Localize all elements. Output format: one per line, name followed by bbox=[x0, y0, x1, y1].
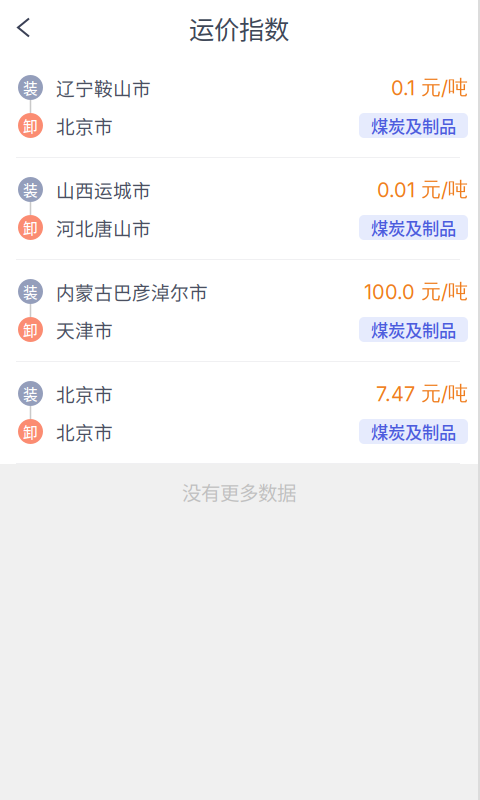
staticText: 装 bbox=[23, 383, 38, 404]
button[interactable]: 装 bbox=[0, 56, 478, 158]
staticText: 卸 bbox=[23, 319, 38, 340]
button[interactable]: Back bbox=[0, 0, 56, 56]
staticText: 天津市 bbox=[56, 316, 113, 343]
staticText: 河北唐山市 bbox=[56, 214, 151, 241]
staticText: 北京市 bbox=[56, 418, 113, 445]
staticText: 山西运城市 bbox=[56, 176, 151, 203]
staticText: 0.01 元/吨 bbox=[377, 177, 468, 202]
staticText: 卸 bbox=[23, 217, 38, 238]
staticText: 没有更多数据 bbox=[182, 478, 296, 506]
staticText: 北京市 bbox=[56, 112, 113, 139]
button[interactable]: 装 bbox=[0, 158, 478, 260]
staticText: 100.0 元/吨 bbox=[364, 279, 468, 304]
staticText: 0.1 元/吨 bbox=[391, 75, 468, 100]
staticText: 内蒙古巴彦淖尔市 bbox=[56, 278, 208, 305]
staticText: 7.47 元/吨 bbox=[376, 381, 468, 406]
button[interactable]: 装 bbox=[0, 362, 478, 464]
staticText: 煤炭及制品 bbox=[371, 113, 456, 138]
staticText: 运价指数 bbox=[189, 10, 289, 46]
staticText: 北京市 bbox=[56, 380, 113, 407]
staticText: 装 bbox=[23, 77, 38, 98]
staticText: 煤炭及制品 bbox=[371, 317, 456, 342]
staticText: 卸 bbox=[23, 421, 38, 442]
button[interactable]: 装 bbox=[0, 260, 478, 362]
staticText: 煤炭及制品 bbox=[371, 419, 456, 444]
staticText: 辽宁鞍山市 bbox=[56, 74, 151, 101]
staticText: 装 bbox=[23, 179, 38, 200]
staticText: 卸 bbox=[23, 115, 38, 136]
staticText: 装 bbox=[23, 281, 38, 302]
staticText: 煤炭及制品 bbox=[371, 215, 456, 240]
